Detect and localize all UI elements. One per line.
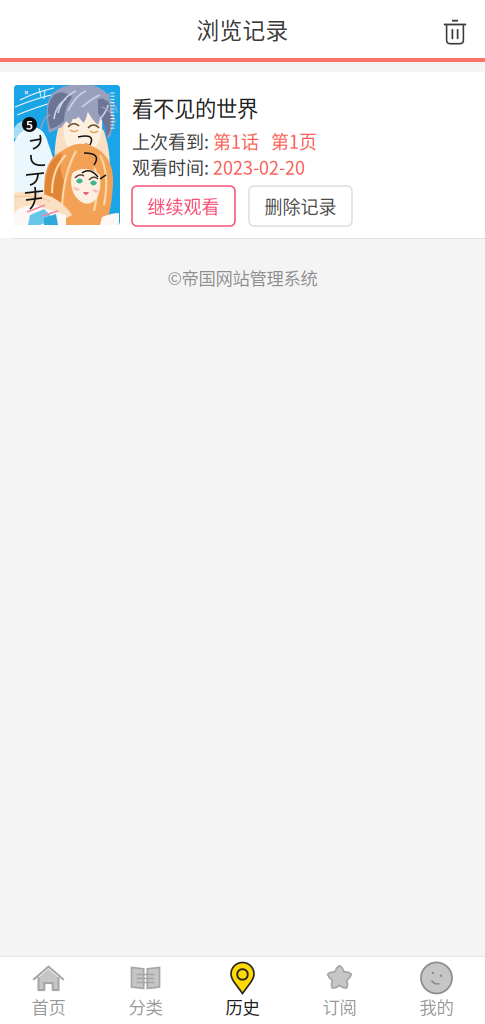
staticText: ©帝国网站管理系统: [167, 265, 317, 290]
staticText: 5: [26, 116, 33, 133]
staticText: 上次看到:: [132, 128, 209, 154]
staticText: 首页: [31, 994, 65, 1019]
staticText: 删除记录: [264, 193, 336, 219]
button[interactable]: 订阅: [291, 957, 388, 1024]
staticText: 2023-02-20: [209, 154, 305, 180]
staticText: 看不见的世界: [132, 92, 258, 123]
button[interactable]: 分类: [97, 957, 194, 1024]
button[interactable]: 我的: [388, 957, 485, 1024]
button[interactable]: 清空浏览记录: [427, 7, 485, 50]
staticText: 第1话: [209, 128, 259, 154]
button[interactable]: 删除记录: [249, 186, 352, 226]
button[interactable]: 首页: [0, 957, 97, 1024]
staticText: 历史: [225, 994, 259, 1019]
staticText: 浏览记录: [196, 13, 288, 45]
staticText: 分类: [128, 994, 162, 1019]
staticText: 继续观看: [147, 193, 219, 219]
staticText: 第1页: [259, 128, 317, 154]
button[interactable]: 继续观看: [132, 186, 235, 226]
staticText: 观看时间:: [132, 154, 209, 180]
staticText: 订阅: [322, 994, 356, 1019]
button[interactable]: 历史: [194, 957, 291, 1024]
staticText: 我的: [419, 994, 453, 1019]
